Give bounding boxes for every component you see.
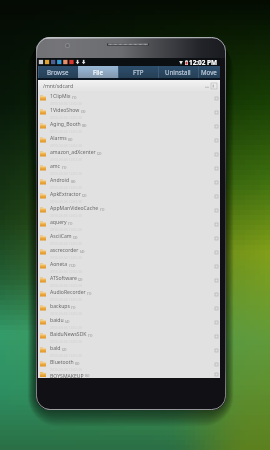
- button[interactable]: Alarms: [38, 133, 220, 147]
- staticText: (0): [68, 137, 73, 142]
- button[interactable]: AudioRecorder: [38, 287, 220, 301]
- staticText: (12): [69, 263, 76, 268]
- button[interactable]: Aging_Booth: [38, 119, 220, 133]
- staticText: Android: [50, 177, 70, 184]
- staticText: (1): [88, 333, 93, 338]
- button[interactable]: File: [78, 66, 118, 78]
- button[interactable]: amc: [38, 161, 220, 175]
- button[interactable]: ATSoftware: [38, 273, 220, 287]
- button[interactable]: FTP: [118, 66, 158, 78]
- button[interactable]: 1VideoShow: [38, 105, 220, 119]
- staticText: BOYSMAKEUP: [50, 373, 84, 378]
- staticText: backups: [50, 303, 70, 310]
- button[interactable]: Uninstall: [158, 66, 198, 78]
- staticText: Move: [201, 68, 217, 76]
- staticText: (2): [78, 277, 83, 282]
- staticText: bald: [50, 345, 61, 352]
- button[interactable]: AsciiCam: [38, 231, 220, 245]
- staticText: (2): [97, 151, 102, 156]
- staticText: AudioRecorder: [50, 289, 86, 296]
- staticText: Alarms: [50, 135, 67, 142]
- button[interactable]: 1ClipMix: [38, 91, 220, 105]
- button[interactable]: Browse: [38, 66, 78, 78]
- button[interactable]: AppManVideoCache: [38, 203, 220, 217]
- staticText: FTP: [133, 68, 144, 76]
- button[interactable]: amazon_adXcenter: [38, 147, 220, 161]
- staticText: (1): [87, 291, 92, 296]
- staticText: File: [93, 68, 103, 76]
- staticText: AsciiCam: [50, 233, 72, 240]
- staticText: ApkExtractor: [50, 191, 81, 198]
- staticText: /mnt/sdcard: [43, 82, 74, 89]
- staticText: Aging_Booth: [50, 121, 81, 128]
- staticText: baidu: [50, 317, 64, 324]
- button[interactable]: bald: [38, 343, 220, 357]
- staticText: (2): [82, 193, 87, 198]
- staticText: (6): [85, 373, 90, 378]
- button[interactable]: Move: [198, 66, 220, 78]
- staticText: (1): [72, 95, 77, 100]
- button[interactable]: Up one level: [210, 82, 218, 90]
- staticText: (1): [68, 221, 73, 226]
- staticText: (2): [62, 347, 67, 352]
- button[interactable]: Android: [38, 175, 220, 189]
- button[interactable]: ApkExtractor: [38, 189, 220, 203]
- staticText: ascrecorder: [50, 247, 79, 254]
- staticText: (8): [71, 179, 76, 184]
- button[interactable]: Bluetooth: [38, 357, 220, 371]
- staticText: (1): [62, 165, 67, 170]
- button[interactable]: aquery: [38, 217, 220, 231]
- staticText: 1VideoShow: [50, 107, 80, 114]
- staticText: (4): [65, 319, 70, 324]
- staticText: AppManVideoCache: [50, 205, 99, 212]
- button[interactable]: baidu: [38, 315, 220, 329]
- staticText: ATSoftware: [50, 275, 77, 282]
- button[interactable]: backups: [38, 301, 220, 315]
- button[interactable]: Sort: [203, 83, 210, 90]
- staticText: Uninstall: [165, 68, 191, 76]
- staticText: (3): [81, 109, 86, 114]
- button[interactable]: BOYSMAKEUP: [38, 371, 220, 378]
- staticText: BaiduNewsSDK: [50, 331, 87, 338]
- staticText: amc: [50, 163, 61, 170]
- staticText: (1): [71, 305, 76, 310]
- button[interactable]: BaiduNewsSDK: [38, 329, 220, 343]
- staticText: amazon_adXcenter: [50, 149, 96, 156]
- staticText: (8): [82, 123, 87, 128]
- staticText: Browse: [47, 68, 69, 76]
- staticText: 1ClipMix: [50, 93, 71, 100]
- staticText: 12:02 PM: [189, 58, 218, 66]
- staticText: (3): [73, 235, 78, 240]
- button[interactable]: Aoneta: [38, 259, 220, 273]
- staticText: (0): [75, 361, 80, 366]
- staticText: (1): [100, 207, 105, 212]
- staticText: aquery: [50, 219, 67, 226]
- staticText: Aoneta: [50, 261, 68, 268]
- staticText: (4): [80, 249, 85, 254]
- staticText: Bluetooth: [50, 359, 74, 366]
- button[interactable]: ascrecorder: [38, 245, 220, 259]
